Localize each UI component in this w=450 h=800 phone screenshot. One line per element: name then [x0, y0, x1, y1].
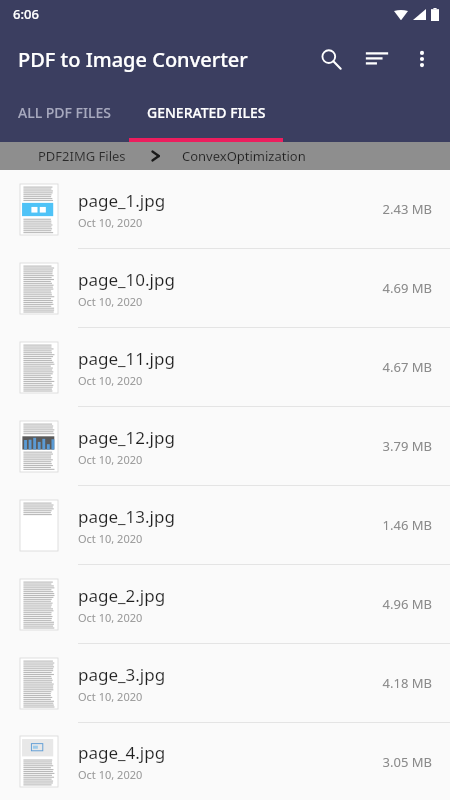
button[interactable]: page_13.jpg [0, 486, 450, 564]
button[interactable]: Search [308, 36, 354, 82]
staticText: page_13.jpg [78, 505, 175, 528]
staticText: 3.05 MB [382, 753, 432, 771]
staticText: Oct 10, 2020 [78, 531, 143, 546]
staticText: 3.79 MB [382, 437, 432, 455]
button[interactable]: page_2.jpg [0, 565, 450, 643]
staticText: 4.69 MB [382, 279, 432, 297]
staticText: 6:06 [13, 5, 39, 23]
button[interactable]: page_10.jpg [0, 249, 450, 327]
staticText: Oct 10, 2020 [78, 294, 143, 309]
staticText: Oct 10, 2020 [78, 373, 143, 388]
staticText: page_12.jpg [78, 426, 175, 449]
button[interactable]: ALL PDF FILES [0, 90, 129, 142]
staticText: page_3.jpg [78, 663, 166, 686]
staticText: PDF2IMG Files [38, 147, 126, 165]
button[interactable]: page_11.jpg [0, 328, 450, 406]
button[interactable]: GENERATED FILES [129, 90, 283, 142]
staticText: Oct 10, 2020 [78, 610, 143, 625]
staticText: page_11.jpg [78, 347, 175, 370]
staticText: 4.18 MB [382, 674, 432, 692]
button[interactable]: page_4.jpg [0, 723, 450, 800]
staticText: page_1.jpg [78, 189, 166, 212]
staticText: Oct 10, 2020 [78, 689, 143, 704]
button[interactable]: Sort [354, 36, 400, 82]
button[interactable]: More options [400, 37, 444, 81]
staticText: ConvexOptimization [182, 147, 306, 165]
button[interactable]: page_12.jpg [0, 407, 450, 485]
staticText: 4.67 MB [382, 358, 432, 376]
button[interactable]: PDF2IMG Files [0, 147, 134, 165]
staticText: GENERATED FILES [147, 103, 266, 122]
staticText: PDF to Image Converter [18, 46, 248, 73]
staticText: page_2.jpg [78, 584, 166, 607]
staticText: 2.43 MB [382, 200, 432, 218]
button[interactable]: page_3.jpg [0, 644, 450, 722]
staticText: Oct 10, 2020 [78, 215, 143, 230]
button[interactable]: ConvexOptimization [182, 147, 306, 165]
staticText: ALL PDF FILES [18, 103, 111, 122]
staticText: page_4.jpg [78, 741, 166, 764]
staticText: 4.96 MB [382, 595, 432, 613]
staticText: 1.46 MB [382, 516, 432, 534]
staticText: Oct 10, 2020 [78, 767, 143, 782]
staticText: page_10.jpg [78, 268, 175, 291]
button[interactable]: page_1.jpg [0, 170, 450, 248]
staticText: Oct 10, 2020 [78, 452, 143, 467]
